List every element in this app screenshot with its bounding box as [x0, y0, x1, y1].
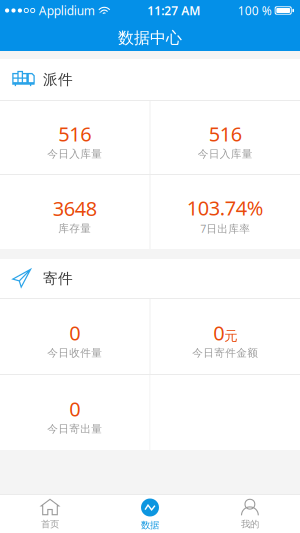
button[interactable]: 我的 — [200, 494, 300, 533]
staticText: 派件 — [43, 70, 73, 88]
staticText: 数据 — [141, 519, 159, 531]
staticText: 516 — [58, 120, 91, 147]
staticText: Applidium — [39, 2, 95, 18]
staticText: 库存量 — [58, 222, 91, 235]
staticText: 数据中心 — [118, 28, 182, 48]
staticText: 100 % — [238, 2, 272, 18]
staticText: 103.74% — [187, 194, 264, 221]
staticText: 我的 — [241, 518, 259, 530]
staticText: 3648 — [53, 195, 97, 221]
staticText: 今日入库量 — [47, 147, 102, 161]
staticText: 11:27 AM — [147, 2, 200, 18]
staticText: 今日寄件金额 — [192, 346, 258, 360]
staticText: 寄件 — [43, 269, 73, 287]
staticText: 0 — [213, 319, 224, 346]
staticText: 元 — [224, 328, 237, 344]
staticText: 首页 — [41, 518, 59, 530]
button[interactable]: 首页 — [0, 494, 100, 533]
staticText: 516 — [209, 120, 242, 147]
staticText: 今日入库量 — [198, 147, 253, 161]
staticText: 今日收件量 — [47, 346, 102, 360]
staticText: 今日寄出量 — [47, 422, 102, 436]
staticText: 7日出库率 — [200, 221, 250, 236]
button[interactable]: 数据 — [100, 494, 200, 533]
staticText: 0 — [69, 319, 80, 346]
staticText: 0 — [69, 395, 80, 422]
